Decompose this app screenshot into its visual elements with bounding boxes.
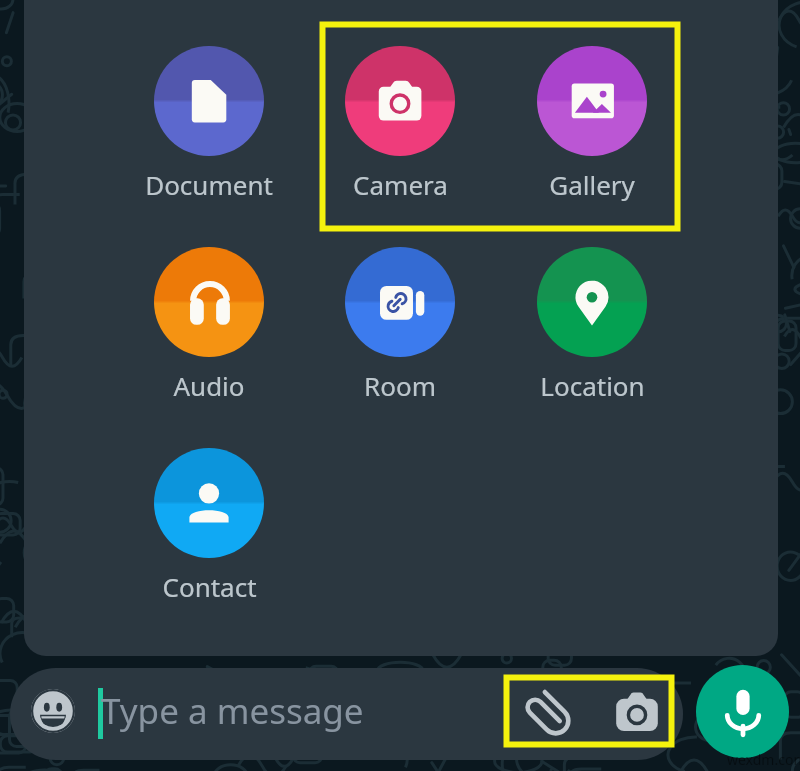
other: Emoji	[31, 689, 75, 733]
staticText: Contact	[162, 569, 257, 604]
button[interactable]: Attach	[521, 686, 577, 742]
button[interactable]: Emoji	[10, 668, 683, 760]
button[interactable]: Camera	[614, 688, 660, 734]
button[interactable]: Gallery	[498, 46, 686, 206]
staticText: Audio	[173, 368, 245, 403]
button[interactable]: Document	[115, 46, 303, 206]
staticText: Room	[364, 368, 436, 403]
button[interactable]: Contact	[115, 448, 303, 608]
staticText: Gallery	[549, 167, 635, 202]
staticText: Location	[540, 368, 645, 403]
staticText: wexdm.com	[727, 750, 800, 769]
staticText: Document	[145, 167, 273, 202]
staticText: Type a message	[101, 687, 364, 735]
button[interactable]: Room	[306, 247, 494, 407]
staticText: Camera	[353, 167, 448, 202]
button[interactable]: Camera	[306, 46, 494, 206]
button[interactable]: Location	[498, 247, 686, 407]
button[interactable]: Audio	[115, 247, 303, 407]
button[interactable]: Voice message	[696, 665, 789, 758]
